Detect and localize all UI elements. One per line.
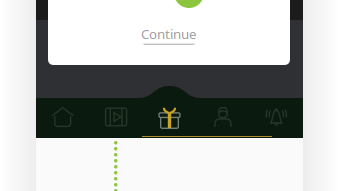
button[interactable]: Notifications — [250, 102, 303, 132]
button[interactable]: Profile — [196, 102, 250, 132]
button[interactable]: Videos — [89, 102, 143, 132]
button[interactable]: Home — [36, 102, 89, 132]
button[interactable]: Rewards — [143, 102, 196, 132]
staticText: Continue — [141, 25, 197, 43]
button[interactable]: Continue — [141, 25, 197, 45]
